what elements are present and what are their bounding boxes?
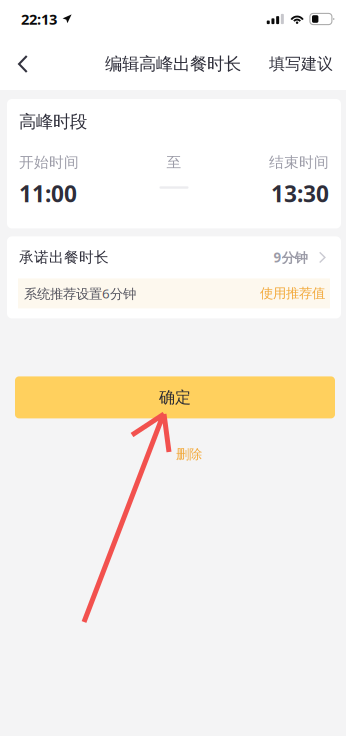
button[interactable]: 使用推荐值 <box>260 285 325 302</box>
staticText: 承诺出餐时长 <box>19 248 109 266</box>
staticText: 13:30 <box>271 178 329 208</box>
staticText: 删除 <box>176 446 202 462</box>
button[interactable]: 开始时间 <box>7 153 79 208</box>
staticText: 结束时间 <box>269 153 329 171</box>
staticText: 高峰时段 <box>19 111 87 132</box>
staticText: 9分钟 <box>274 249 308 266</box>
button[interactable]: 结束时间 <box>269 153 341 208</box>
button[interactable]: 返回 <box>0 42 46 86</box>
staticText: 使用推荐值 <box>260 285 325 302</box>
button[interactable]: 承诺出餐时长 <box>7 236 341 278</box>
staticText: 至 <box>166 153 181 171</box>
staticText: 22:13 <box>21 9 57 29</box>
button[interactable]: 填写建议 <box>257 42 346 86</box>
staticText: 11:00 <box>19 178 77 208</box>
staticText: 填写建议 <box>269 54 333 74</box>
staticText: 确定 <box>159 388 191 407</box>
staticText: 开始时间 <box>19 153 79 171</box>
staticText: 系统推荐设置6分钟 <box>24 285 136 302</box>
staticText: 编辑高峰出餐时长 <box>105 53 241 75</box>
button[interactable]: 确定 <box>15 376 335 418</box>
